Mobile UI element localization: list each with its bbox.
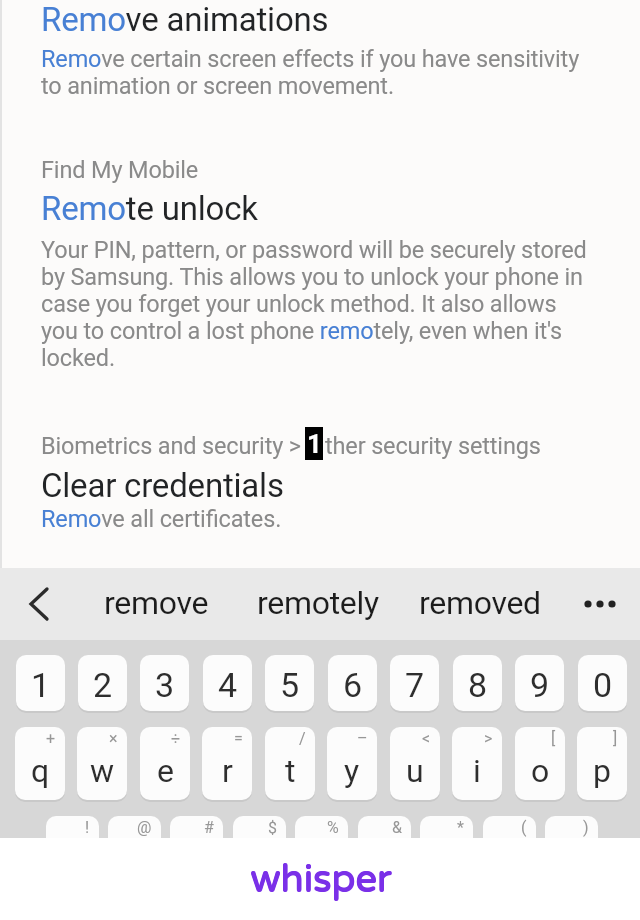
staticText: Your PIN, pattern, or password will be s… xyxy=(41,236,587,264)
staticText: % xyxy=(327,818,339,837)
staticText: remotely xyxy=(257,584,379,622)
staticText: > xyxy=(484,729,493,748)
button[interactable]: % xyxy=(295,816,348,889)
staticText: ) xyxy=(583,818,589,837)
staticText: 2 xyxy=(93,665,113,705)
staticText: whisper xyxy=(251,857,392,903)
button[interactable]: Clear credentials xyxy=(0,0,243,39)
button[interactable]: Remove animations xyxy=(0,0,288,39)
staticText: y xyxy=(344,752,360,790)
staticText: removed xyxy=(419,584,541,622)
button[interactable]: 8 xyxy=(453,655,502,711)
staticText: 7 xyxy=(405,665,425,705)
staticText: + xyxy=(46,729,56,748)
staticText: 3 xyxy=(155,665,175,705)
button[interactable]: whisper xyxy=(0,838,640,920)
staticText: Remove all certificates. xyxy=(41,505,282,533)
staticText: * xyxy=(457,818,464,837)
button[interactable]: = xyxy=(202,727,252,800)
staticText: – xyxy=(357,729,368,748)
button[interactable]: 5 xyxy=(265,655,314,711)
staticText: $ xyxy=(268,818,277,837)
staticText: ] xyxy=(613,729,618,748)
staticText: = xyxy=(234,729,243,748)
button[interactable]: Remote unlock xyxy=(0,0,217,39)
button[interactable]: ] xyxy=(577,727,627,800)
button[interactable]: > xyxy=(452,727,502,800)
staticText: o xyxy=(531,752,550,790)
staticText: Remove certain screen effects if you hav… xyxy=(41,45,580,73)
staticText: 5 xyxy=(280,665,300,705)
button[interactable]: [ xyxy=(515,727,565,800)
button[interactable]: 1 xyxy=(16,655,65,711)
staticText: & xyxy=(392,818,402,837)
staticText: 6 xyxy=(343,665,363,705)
button[interactable]: remotely xyxy=(252,568,384,640)
button[interactable]: 3 xyxy=(140,655,189,711)
staticText: Biometrics and security > xyxy=(41,432,307,460)
button[interactable]: 2 xyxy=(78,655,127,711)
button[interactable]: ) xyxy=(545,816,598,889)
staticText: 1 xyxy=(307,429,322,459)
staticText: # xyxy=(204,818,214,837)
button[interactable]: * xyxy=(420,816,473,889)
button[interactable]: – xyxy=(327,727,377,800)
staticText: whisper xyxy=(250,857,391,903)
button[interactable]: 9 xyxy=(515,655,564,711)
staticText: ÷ xyxy=(171,729,181,748)
staticText: whisper xyxy=(250,856,391,902)
staticText: r xyxy=(222,752,233,790)
staticText: whisper xyxy=(251,856,392,902)
staticText: by Samsung. This allows you to unlock yo… xyxy=(41,263,583,291)
staticText: i xyxy=(473,752,481,790)
button[interactable]: × xyxy=(77,727,127,800)
staticText: × xyxy=(109,729,118,748)
staticText: 4 xyxy=(218,665,238,705)
staticText: 8 xyxy=(468,665,488,705)
button[interactable]: removed xyxy=(416,568,544,640)
button[interactable] xyxy=(576,580,624,628)
staticText: 1 xyxy=(31,665,51,705)
button[interactable]: ÷ xyxy=(140,727,190,800)
button[interactable]: 0 xyxy=(578,655,627,711)
button[interactable]: 6 xyxy=(328,655,377,711)
staticText: / xyxy=(299,729,306,748)
staticText: t xyxy=(285,752,296,790)
button[interactable]: 4 xyxy=(203,655,252,711)
staticText: to animation or screen movement. xyxy=(41,72,394,100)
button[interactable]: @ xyxy=(108,816,161,889)
button[interactable] xyxy=(16,580,64,628)
button[interactable]: remove xyxy=(96,568,216,640)
staticText: locked. xyxy=(41,344,115,372)
staticText: ! xyxy=(85,818,90,837)
button[interactable]: $ xyxy=(233,816,286,889)
staticText: Find My Mobile xyxy=(41,156,199,184)
staticText: @ xyxy=(137,818,152,837)
staticText: 9 xyxy=(530,665,550,705)
staticText: e xyxy=(157,752,174,790)
staticText: remove xyxy=(104,584,209,622)
staticText: [ xyxy=(551,729,556,748)
button[interactable]: # xyxy=(170,816,223,889)
button[interactable]: < xyxy=(390,727,440,800)
staticText: ther security settings xyxy=(325,432,541,460)
staticText: case you forget your unlock method. It a… xyxy=(41,290,557,318)
staticText: w xyxy=(90,752,115,790)
staticText: q xyxy=(31,752,50,790)
staticText: you to control a lost phone remotely, ev… xyxy=(41,317,563,345)
staticText: 0 xyxy=(593,665,613,705)
staticText: ( xyxy=(521,818,527,837)
button[interactable]: ( xyxy=(483,816,536,889)
button[interactable]: ! xyxy=(46,816,99,889)
button[interactable]: / xyxy=(265,727,315,800)
button[interactable]: + xyxy=(15,727,65,800)
staticText: u xyxy=(406,752,424,790)
staticText: p xyxy=(593,752,611,790)
button[interactable]: 7 xyxy=(390,655,439,711)
button[interactable]: & xyxy=(358,816,411,889)
staticText: < xyxy=(422,729,431,748)
